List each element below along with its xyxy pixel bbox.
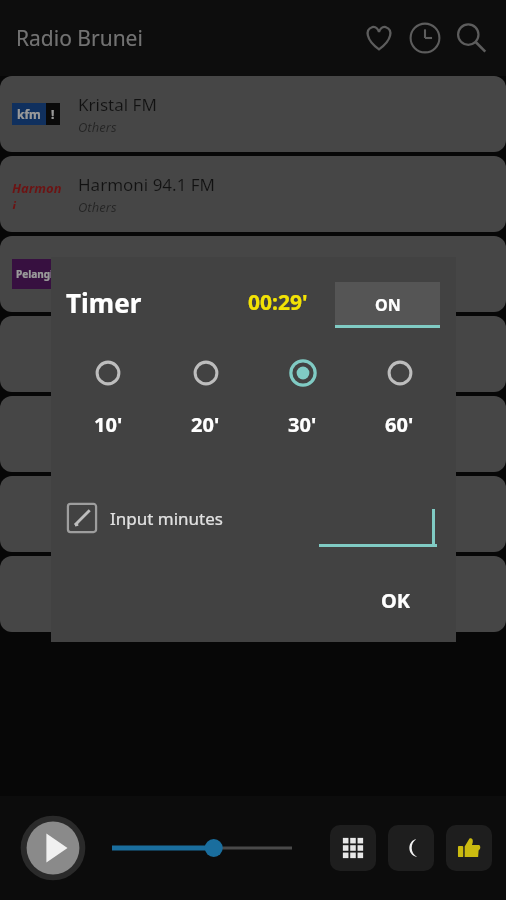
button[interactable]: 10' xyxy=(59,357,157,438)
staticText: 60' xyxy=(385,411,414,438)
button[interactable]: Play xyxy=(20,815,86,881)
button[interactable] xyxy=(0,316,506,392)
staticText: Harmoni 94.1 FM xyxy=(78,173,216,196)
button[interactable]: Input minutes xyxy=(66,502,223,534)
staticText: ! xyxy=(51,106,55,122)
staticText: 00:29' xyxy=(248,288,308,317)
button[interactable] xyxy=(0,396,506,472)
button[interactable]: 60' xyxy=(351,357,448,438)
button[interactable]: 20' xyxy=(157,357,254,438)
staticText: Kristal FM xyxy=(78,93,157,116)
button[interactable]: Others xyxy=(0,556,506,632)
button[interactable]: Harmoni xyxy=(0,156,506,232)
button[interactable]: Timer xyxy=(402,15,448,61)
staticText: Harmoni xyxy=(12,179,62,209)
staticText: Input minutes xyxy=(110,507,223,530)
button[interactable]: Sleep timer xyxy=(388,825,434,871)
button[interactable]: 30' xyxy=(254,357,351,438)
button[interactable]: Volume xyxy=(110,828,292,868)
staticText: Radio Brunei xyxy=(16,24,143,53)
staticText: 10' xyxy=(94,411,123,438)
staticText: 20' xyxy=(191,411,220,438)
button[interactable] xyxy=(0,476,506,552)
button[interactable]: kfm xyxy=(0,76,506,152)
button[interactable]: OK xyxy=(351,577,441,623)
staticText: Timer xyxy=(66,285,142,320)
button[interactable]: Search xyxy=(448,15,494,61)
staticText: Others xyxy=(78,278,117,296)
button[interactable]: Favorites xyxy=(356,15,402,61)
button[interactable] xyxy=(319,505,437,547)
staticText: Others xyxy=(78,118,117,136)
staticText: ON xyxy=(375,294,401,316)
button[interactable]: Like xyxy=(446,825,492,871)
button[interactable]: Pelangi xyxy=(0,236,506,312)
button[interactable]: ON xyxy=(335,282,440,328)
staticText: OK xyxy=(381,587,411,614)
staticText: Pelangi xyxy=(16,267,53,281)
staticText: kfm xyxy=(17,106,41,122)
button[interactable]: Stations xyxy=(330,825,376,871)
staticText: Others xyxy=(78,198,117,216)
staticText: 30' xyxy=(288,411,317,438)
